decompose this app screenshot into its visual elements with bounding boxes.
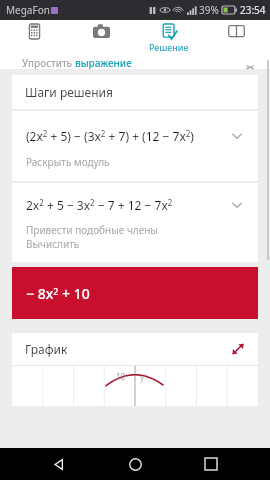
button[interactable]: Развернуть [230,198,244,212]
button[interactable]: − 8x2 + 10 [12,267,258,319]
staticText: (2x2 + 5) − (3x2 + 7) + (12 − 7x2) [26,128,194,144]
staticText: Решение [149,41,189,53]
button[interactable]: Назад [42,448,76,480]
staticText: 2x2 + 5 − 3x2 − 7 + 12 − 7x2 [26,197,173,213]
button[interactable]: Закрыть [244,57,256,69]
staticText: Упростить [22,56,75,69]
button[interactable]: Развернуть график [230,341,246,357]
button[interactable]: График [12,333,258,365]
staticText: 23:54 [240,3,266,17]
button[interactable]: Камера [68,20,134,56]
staticText: Привести подобные члены [26,223,158,237]
button[interactable]: 2x2 + 5 − 3x2 − 7 + 12 − 7x2 [12,183,258,262]
button[interactable]: Справочник [203,20,269,56]
staticText: 10 [116,371,126,382]
button[interactable]: Обзор [194,448,228,480]
staticText: Шаги решения [25,84,113,100]
staticText: MegaFon [6,3,50,17]
staticText: График [25,341,68,357]
button[interactable]: Развернуть [230,129,244,143]
button[interactable]: Шаги решения [12,75,258,109]
staticText: y [140,372,145,383]
staticText: − 8x2 + 10 [26,284,90,303]
staticText: Вычислить [26,237,80,251]
button[interactable]: Калькулятор [1,20,67,56]
button[interactable]: Главный экран [118,448,152,480]
staticText: выражение [75,56,132,69]
button[interactable]: (2x2 + 5) − (3x2 + 7) + (12 − 7x2) [12,111,258,181]
staticText: Раскрыть модуль [26,155,110,169]
staticText: 39% [199,3,219,17]
button[interactable]: Решение [136,20,202,56]
